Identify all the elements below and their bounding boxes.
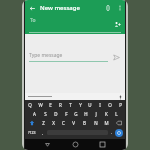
button[interactable]: A (29, 109, 40, 118)
button[interactable]: Back (25, 1, 39, 15)
staticText: J (95, 111, 97, 117)
button[interactable]: Shift (25, 118, 38, 127)
staticText: T (69, 102, 72, 108)
staticText: S (44, 111, 47, 117)
staticText: V (72, 120, 75, 126)
button[interactable]: V (68, 118, 79, 127)
staticText: M (104, 120, 109, 126)
button[interactable]: B (79, 118, 90, 127)
button[interactable]: , (39, 127, 47, 138)
button[interactable]: P (115, 100, 125, 109)
staticText: U (88, 102, 92, 108)
staticText: R (59, 102, 62, 108)
button[interactable]: Y (75, 100, 85, 109)
staticText: G (74, 111, 78, 117)
staticText: A (33, 111, 36, 117)
button[interactable]: I (95, 100, 105, 109)
button[interactable]: Recents (97, 139, 108, 150)
staticText: X (52, 120, 55, 126)
staticText: . (111, 130, 113, 135)
button[interactable]: Back (42, 139, 53, 150)
button[interactable]: . (108, 127, 115, 138)
staticText: P (119, 102, 122, 108)
button[interactable]: ?123 (25, 127, 39, 138)
button[interactable]: W (35, 100, 45, 109)
staticText: W (38, 102, 43, 108)
button[interactable]: J (91, 109, 101, 118)
button[interactable]: M (101, 118, 112, 127)
button[interactable]: E (45, 100, 55, 109)
staticText: Z (42, 120, 45, 126)
button[interactable]: Type message (25, 50, 125, 64)
button[interactable]: T (65, 100, 75, 109)
staticText: Y (79, 102, 82, 108)
button[interactable]: More options (114, 2, 125, 13)
button[interactable]: K (101, 109, 111, 118)
button[interactable]: H (81, 109, 91, 118)
button[interactable]: L (111, 109, 121, 118)
button[interactable]: Z (38, 118, 48, 127)
button[interactable]: U (85, 100, 95, 109)
staticText: H (84, 111, 88, 117)
staticText: B (83, 120, 86, 126)
button[interactable]: Backspace (112, 118, 125, 127)
staticText: Type message (29, 52, 63, 59)
staticText: L (115, 111, 118, 117)
button[interactable]: O (105, 100, 115, 109)
staticText: N (94, 120, 98, 126)
button[interactable]: Send (111, 52, 122, 63)
staticText: To (30, 17, 36, 24)
button[interactable]: F (61, 109, 71, 118)
button[interactable]: Add contact (112, 19, 122, 29)
button[interactable]: X (48, 118, 58, 127)
staticText: E (49, 102, 52, 108)
staticText: C (62, 120, 65, 126)
staticText: O (108, 102, 112, 108)
button[interactable]: G (71, 109, 81, 118)
button[interactable]: Attach (101, 1, 114, 14)
button[interactable]: S (40, 109, 51, 118)
button[interactable]: Home (70, 139, 81, 150)
staticText: New message (40, 4, 80, 12)
staticText: ?123 (28, 130, 36, 135)
button[interactable]: R (55, 100, 65, 109)
button[interactable]: Q (25, 100, 35, 109)
staticText: K (105, 111, 108, 117)
button[interactable]: Voice input (117, 94, 123, 100)
button[interactable]: D (51, 109, 61, 118)
button[interactable]: Enter (115, 129, 123, 137)
staticText: D (54, 111, 58, 117)
staticText: Q (28, 102, 32, 108)
button[interactable]: C (58, 118, 68, 127)
staticText: F (65, 111, 68, 117)
staticText: I (99, 102, 101, 108)
staticText: , (42, 130, 44, 135)
button[interactable]: N (90, 118, 101, 127)
